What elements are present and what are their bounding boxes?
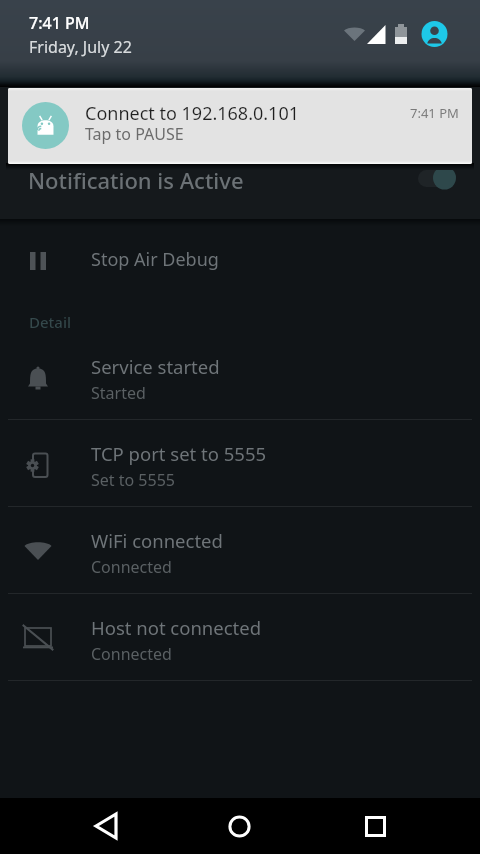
- staticText: Set to 5555: [91, 469, 175, 491]
- button[interactable]: Home: [210, 798, 270, 854]
- staticText: Connected: [91, 643, 172, 665]
- button[interactable]: Service started: [0, 333, 480, 419]
- button[interactable]: Notification toggle: [408, 148, 472, 192]
- button[interactable]: Host not connected: [0, 594, 480, 680]
- staticText: Connect to 192.168.0.101: [85, 101, 299, 126]
- button[interactable]: Stop Air Debug: [0, 226, 480, 288]
- staticText: Host not connected: [91, 615, 262, 640]
- staticText: Friday, July 22: [29, 36, 132, 58]
- staticText: Stop Air Debug: [91, 247, 219, 272]
- button[interactable]: Recent apps: [345, 798, 405, 854]
- staticText: Notification is Active: [28, 165, 244, 195]
- staticText: Started: [91, 382, 146, 404]
- staticText: Service started: [91, 354, 220, 379]
- button[interactable]: Connect to 192.168.0.101: [8, 88, 472, 164]
- staticText: WiFi connected: [91, 528, 223, 553]
- staticText: Detail: [29, 312, 72, 332]
- staticText: TCP port set to 5555: [91, 441, 267, 466]
- button[interactable]: Back: [78, 798, 138, 854]
- button[interactable]: TCP port set to 5555: [0, 420, 480, 506]
- staticText: 7:41 PM: [29, 12, 90, 34]
- button[interactable]: WiFi connected: [0, 507, 480, 593]
- staticText: Connected: [91, 556, 172, 578]
- staticText: 7:41 PM: [410, 104, 459, 122]
- staticText: Tap to PAUSE: [85, 123, 184, 145]
